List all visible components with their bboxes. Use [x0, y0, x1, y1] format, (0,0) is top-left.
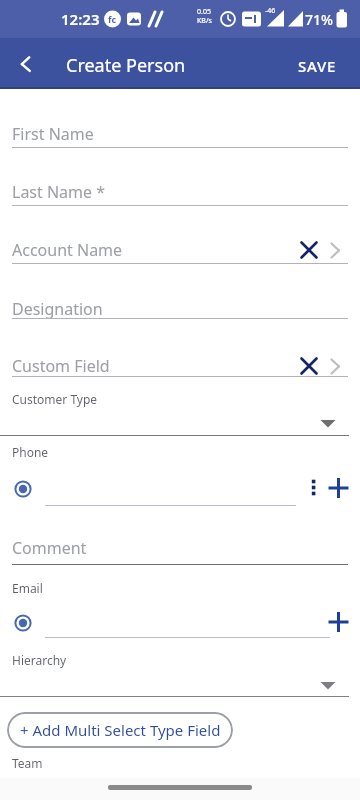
- staticText: 71%: [305, 10, 333, 29]
- staticText: Hierarchy: [12, 652, 67, 668]
- button[interactable]: [0, 408, 360, 436]
- button[interactable]: [295, 352, 321, 380]
- button[interactable]: [45, 480, 296, 506]
- staticText: Email: [12, 580, 43, 596]
- button[interactable]: [326, 609, 352, 635]
- button[interactable]: [11, 611, 35, 635]
- button[interactable]: + Add Multi Select Type Field: [7, 712, 233, 748]
- staticText: Team: [12, 755, 43, 771]
- staticText: -46: [265, 6, 276, 16]
- staticText: SAVE: [298, 56, 337, 76]
- button[interactable]: [0, 38, 56, 88]
- staticText: Phone: [12, 444, 49, 460]
- button[interactable]: [0, 350, 290, 380]
- button[interactable]: [325, 236, 351, 264]
- staticText: 12:23: [61, 9, 100, 29]
- staticText: Designation: [12, 298, 103, 320]
- button[interactable]: [0, 234, 290, 268]
- staticText: Create Person: [66, 53, 186, 78]
- button[interactable]: [11, 477, 35, 501]
- button[interactable]: [0, 532, 360, 566]
- button[interactable]: [0, 118, 360, 152]
- button[interactable]: [284, 38, 360, 88]
- button[interactable]: [325, 352, 351, 380]
- staticText: fc: [108, 13, 117, 25]
- staticText: First Name: [12, 123, 94, 145]
- button[interactable]: [45, 612, 330, 638]
- button[interactable]: [303, 476, 323, 502]
- staticText: Customer Type: [12, 391, 98, 407]
- staticText: Comment: [12, 537, 87, 559]
- staticText: Account Name: [12, 239, 123, 261]
- staticText: KB/s: [197, 16, 212, 26]
- button[interactable]: [0, 176, 360, 210]
- button[interactable]: [0, 669, 360, 697]
- button[interactable]: [0, 293, 360, 323]
- staticText: Last Name *: [12, 181, 106, 203]
- button[interactable]: [326, 475, 352, 501]
- button[interactable]: [295, 236, 321, 264]
- staticText: Custom Field: [12, 355, 110, 377]
- staticText: 0.05: [197, 7, 211, 17]
- staticText: + Add Multi Select Type Field: [20, 720, 221, 740]
